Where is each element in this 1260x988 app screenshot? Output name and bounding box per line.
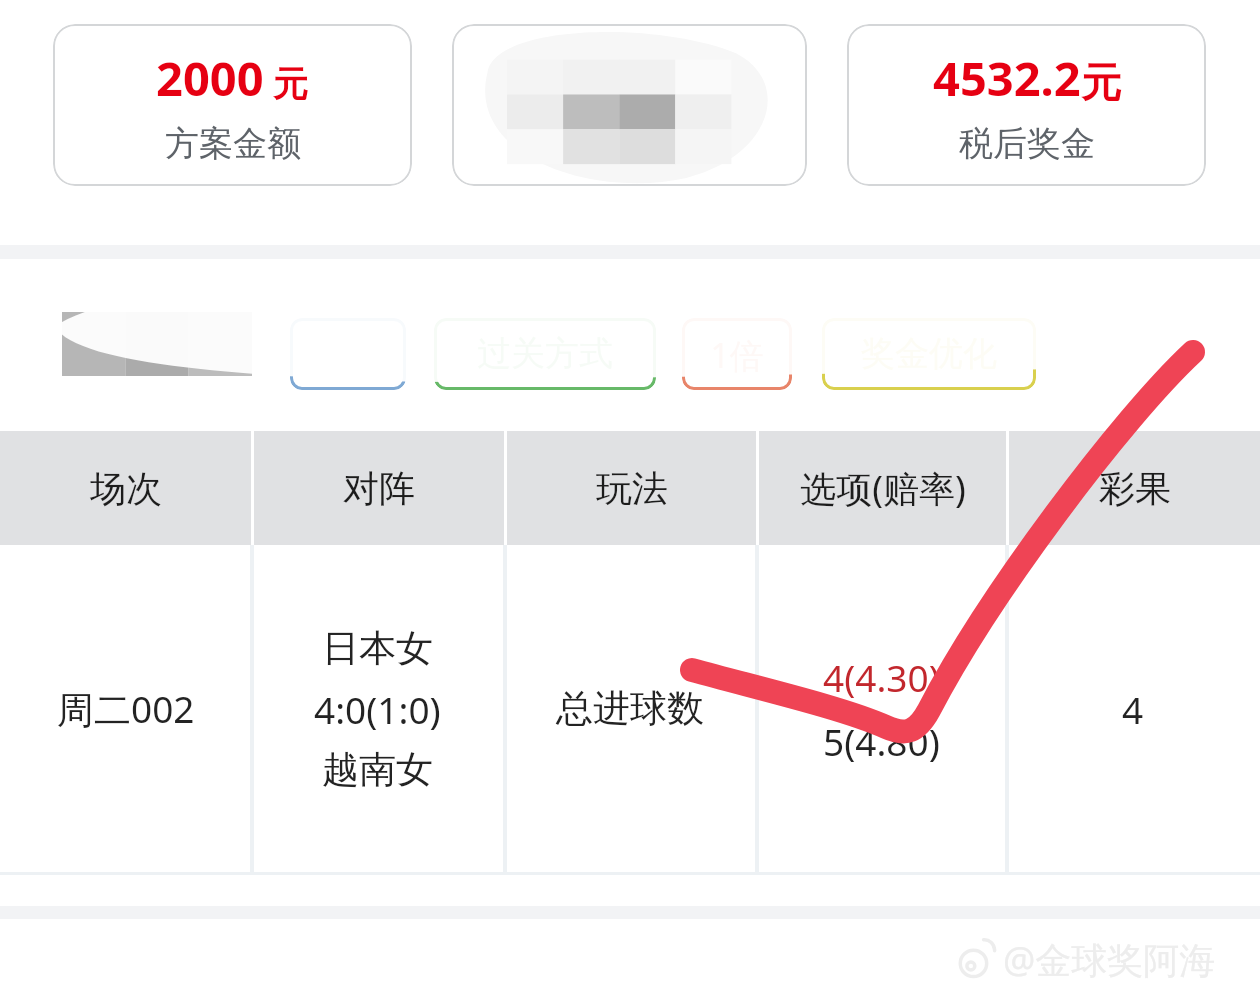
- staticText: 日本女: [322, 625, 433, 672]
- button[interactable]: Hidden amount: [452, 24, 807, 186]
- staticText: 2000: [156, 46, 264, 110]
- staticText: 周二002: [57, 683, 195, 734]
- button[interactable]: 过关方式: [434, 318, 656, 390]
- button[interactable]: 周二002: [0, 545, 251, 872]
- button[interactable]: 4532.2: [847, 24, 1206, 186]
- staticText: 元: [1081, 57, 1121, 107]
- staticText: 5(4.80): [823, 716, 940, 766]
- staticText: 4: [1122, 684, 1144, 734]
- button[interactable]: 4: [1006, 545, 1260, 872]
- staticText: 奖金优化: [861, 332, 997, 375]
- staticText: 越南女: [322, 746, 433, 793]
- button[interactable]: 彩果: [1009, 431, 1260, 545]
- staticText: @金球奖阿海: [1003, 935, 1216, 984]
- staticText: 税后奖金: [959, 122, 1095, 165]
- staticText: 4532.2: [933, 46, 1081, 110]
- button[interactable]: 对阵: [254, 431, 504, 545]
- staticText: 方案金额: [165, 122, 301, 165]
- staticText: 4:0(1:0): [314, 684, 441, 734]
- staticText: 过关方式: [477, 332, 613, 375]
- staticText: 彩果: [1099, 466, 1171, 511]
- button[interactable]: 总进球数: [504, 545, 756, 872]
- button[interactable]: Filter: [290, 318, 406, 390]
- button[interactable]: 1倍: [682, 318, 792, 390]
- staticText: 选项(赔率): [800, 464, 966, 513]
- button[interactable]: 选项(赔率): [759, 431, 1006, 545]
- button[interactable]: 4(4.30): [756, 545, 1006, 872]
- staticText: 总进球数: [556, 685, 704, 732]
- staticText: 对阵: [343, 466, 415, 511]
- staticText: 场次: [90, 466, 162, 511]
- button[interactable]: 场次: [0, 431, 251, 545]
- button[interactable]: 日本女: [251, 545, 504, 872]
- staticText: 1倍: [710, 332, 764, 378]
- staticText: 玩法: [596, 466, 668, 511]
- staticText: 元: [264, 59, 309, 107]
- button[interactable]: 2000: [53, 24, 412, 186]
- button[interactable]: 奖金优化: [822, 318, 1036, 390]
- button[interactable]: 玩法: [507, 431, 756, 545]
- staticText: 4(4.30): [823, 652, 940, 702]
